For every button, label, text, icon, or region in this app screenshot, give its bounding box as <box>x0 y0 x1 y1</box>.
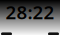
staticText: 28:22 <box>5 0 54 24</box>
